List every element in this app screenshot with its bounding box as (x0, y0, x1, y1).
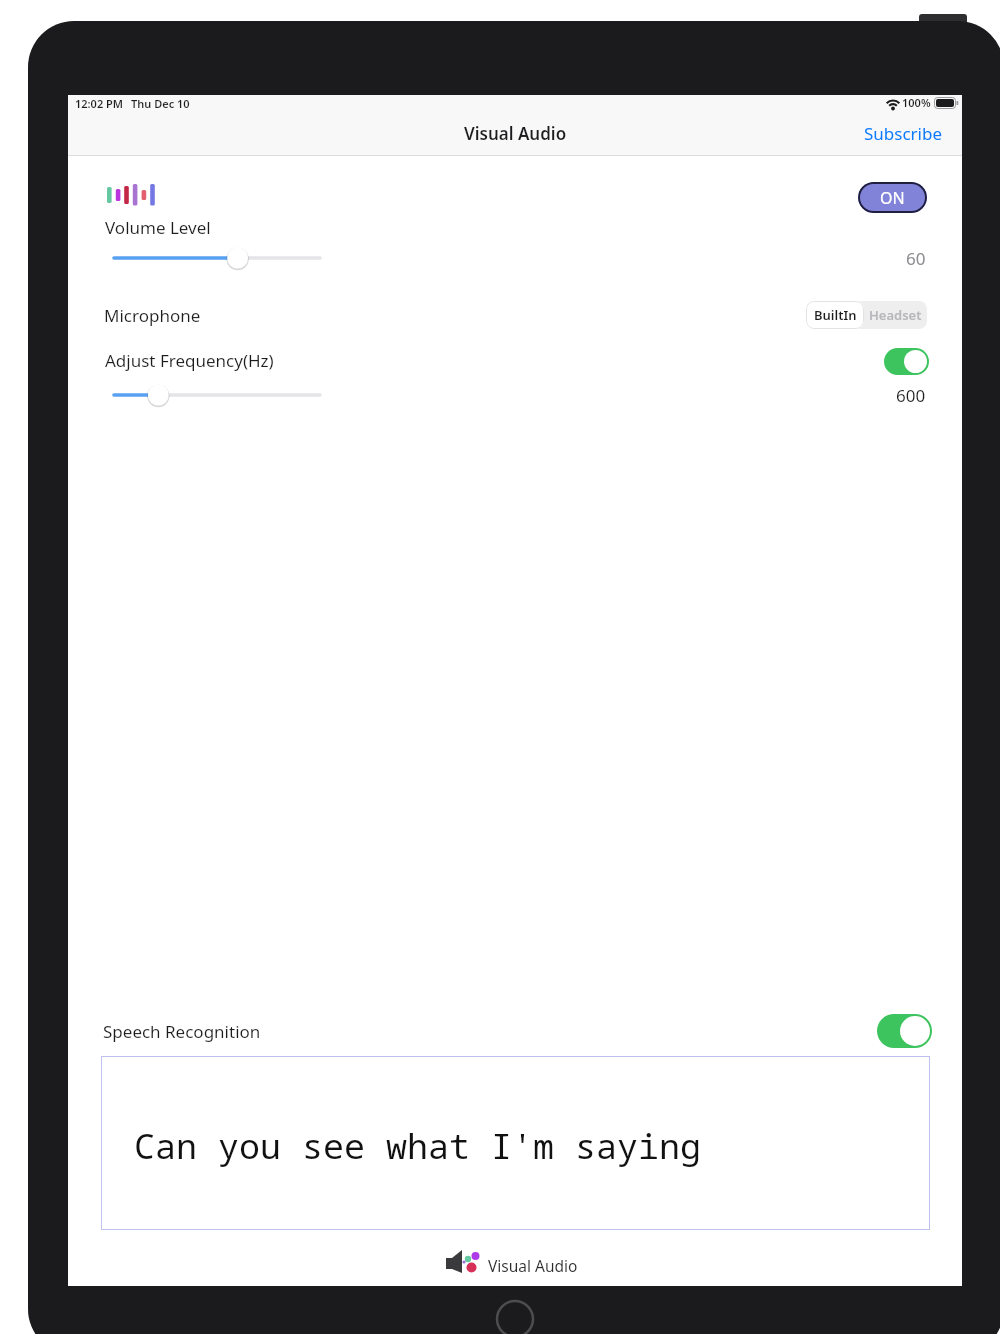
button[interactable] (108, 240, 328, 276)
button[interactable]: Headset (864, 301, 927, 329)
staticText: Can you see what I'm saying (134, 1122, 702, 1170)
staticText: Microphone (104, 304, 201, 327)
staticText: Visual Audio (488, 1255, 578, 1276)
button[interactable]: BuiltIn (806, 301, 864, 329)
button[interactable]: Subscribe (843, 117, 943, 149)
staticText: BuiltIn (814, 306, 857, 324)
staticText: Volume Level (105, 216, 211, 239)
button[interactable] (884, 348, 929, 375)
staticText: 12:02 PM (75, 96, 124, 111)
staticText: Thu Dec 10 (131, 96, 190, 111)
staticText: Speech Recognition (103, 1020, 261, 1043)
staticText: Headset (869, 306, 922, 324)
staticText: 600 (896, 384, 926, 407)
staticText: 100% (902, 95, 931, 110)
staticText: 60 (906, 247, 926, 270)
button[interactable] (108, 377, 328, 413)
staticText: ON (880, 187, 905, 209)
button[interactable] (877, 1014, 932, 1048)
button[interactable]: ON (858, 182, 927, 213)
staticText: Adjust Frequency(Hz) (105, 349, 274, 372)
staticText: Visual Audio (464, 122, 567, 145)
staticText: Subscribe (864, 122, 943, 145)
